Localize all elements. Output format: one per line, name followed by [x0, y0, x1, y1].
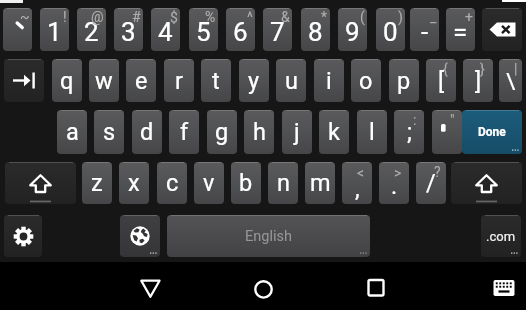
- button[interactable]: [451, 162, 522, 204]
- button[interactable]: b: [231, 162, 261, 204]
- staticText: +: [465, 9, 473, 25]
- button[interactable]: [: [426, 59, 456, 102]
- button[interactable]: u: [276, 59, 306, 102]
- button[interactable]: /: [416, 162, 446, 204]
- button[interactable]: e: [126, 59, 156, 102]
- button[interactable]: p: [389, 59, 419, 102]
- staticText: b: [239, 169, 253, 197]
- staticText: }: [480, 61, 485, 77]
- staticText: e: [135, 67, 148, 95]
- button[interactable]: ": [432, 110, 462, 154]
- button[interactable]: .com: [481, 215, 521, 257]
- button[interactable]: \: [499, 59, 522, 102]
- button[interactable]: ;: [394, 110, 424, 154]
- button[interactable]: m: [305, 162, 335, 204]
- staticText: :: [413, 112, 417, 128]
- button[interactable]: 1: [40, 8, 69, 51]
- staticText: 3: [121, 17, 136, 47]
- staticText: u: [285, 67, 298, 95]
- button[interactable]: q: [52, 59, 82, 102]
- button[interactable]: 8: [301, 8, 330, 51]
- button[interactable]: [134, 276, 166, 302]
- button[interactable]: l: [357, 110, 387, 154]
- staticText: ;: [407, 118, 412, 146]
- staticText: 7: [270, 17, 285, 47]
- button[interactable]: -: [410, 8, 439, 51]
- button[interactable]: [360, 273, 392, 299]
- staticText: ]: [475, 67, 482, 95]
- staticText: ): [398, 9, 403, 25]
- staticText: l: [369, 118, 375, 146]
- staticText: 8: [308, 17, 323, 47]
- staticText: x: [128, 169, 140, 197]
- staticText: p: [397, 67, 411, 95]
- staticText: <: [357, 165, 365, 181]
- button[interactable]: [120, 215, 160, 257]
- button[interactable]: k: [319, 110, 349, 154]
- button[interactable]: Done: [462, 110, 522, 154]
- button[interactable]: j: [282, 110, 312, 154]
- button[interactable]: v: [194, 162, 224, 204]
- button[interactable]: 3: [114, 8, 143, 51]
- button[interactable]: d: [132, 110, 162, 154]
- staticText: o: [359, 67, 373, 95]
- button[interactable]: 6: [226, 8, 255, 51]
- button[interactable]: g: [207, 110, 237, 154]
- button[interactable]: [488, 279, 520, 299]
- button[interactable]: f: [169, 110, 199, 154]
- staticText: i: [326, 67, 332, 95]
- button[interactable]: =: [446, 8, 475, 51]
- button[interactable]: a: [57, 110, 87, 154]
- button[interactable]: x: [119, 162, 149, 204]
- staticText: v: [203, 169, 215, 197]
- staticText: ?: [434, 164, 441, 180]
- staticText: ,: [355, 175, 360, 203]
- staticText: #: [132, 9, 141, 25]
- button[interactable]: English: [167, 215, 370, 257]
- button[interactable]: ]: [463, 59, 493, 102]
- button[interactable]: [4, 215, 42, 257]
- button[interactable]: .: [379, 162, 409, 204]
- button[interactable]: r: [164, 59, 194, 102]
- button[interactable]: [4, 59, 44, 102]
- button[interactable]: s: [94, 110, 124, 154]
- button[interactable]: 2: [77, 8, 106, 51]
- staticText: 1: [47, 17, 62, 47]
- button[interactable]: 4: [151, 8, 180, 51]
- staticText: ~: [20, 9, 30, 25]
- staticText: !: [63, 9, 67, 25]
- staticText: n: [277, 169, 290, 197]
- staticText: 4: [158, 17, 173, 47]
- button[interactable]: 9: [338, 8, 367, 51]
- button[interactable]: t: [201, 59, 231, 102]
- button[interactable]: o: [351, 59, 381, 102]
- staticText: =: [453, 17, 468, 47]
- button[interactable]: [5, 162, 76, 204]
- staticText: w: [95, 67, 113, 95]
- staticText: 2: [84, 17, 99, 47]
- button[interactable]: z: [82, 162, 112, 204]
- button[interactable]: 5: [189, 8, 218, 51]
- button[interactable]: [248, 273, 280, 299]
- staticText: _: [430, 9, 437, 25]
- staticText: s: [103, 118, 116, 146]
- button[interactable]: n: [268, 162, 298, 204]
- staticText: r: [175, 67, 183, 95]
- button[interactable]: c: [157, 162, 187, 204]
- button[interactable]: i: [314, 59, 344, 102]
- staticText: /: [426, 169, 436, 197]
- staticText: @: [91, 9, 104, 25]
- button[interactable]: ~: [3, 8, 32, 51]
- staticText: *: [321, 9, 328, 25]
- button[interactable]: h: [244, 110, 274, 154]
- button[interactable]: ,: [342, 162, 372, 204]
- staticText: >: [394, 165, 402, 181]
- button[interactable]: w: [89, 59, 119, 102]
- button[interactable]: 0: [376, 8, 405, 51]
- button[interactable]: y: [239, 59, 269, 102]
- button[interactable]: 7: [263, 8, 292, 51]
- button[interactable]: [482, 8, 522, 51]
- staticText: {: [443, 61, 448, 77]
- staticText: f: [180, 118, 189, 146]
- staticText: d: [140, 118, 154, 146]
